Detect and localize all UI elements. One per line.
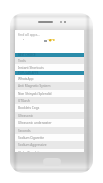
button[interactable]: Sodium Aggressive: [15, 141, 84, 149]
staticText: find all apps...: [18, 32, 41, 37]
button[interactable]: Back: [17, 32, 27, 42]
staticText: Anti Magnetic System: [18, 84, 51, 88]
staticText: Instant Shortcuts: [18, 66, 44, 70]
button[interactable]: Non Shinyaki Splendid: [15, 90, 84, 98]
staticText: POPULAR APPS: [18, 71, 39, 75]
button[interactable]: WhatsApp: [15, 75, 84, 83]
button[interactable]: BEST CHOICE: [15, 53, 84, 57]
staticText: Sodium Aggressive: [18, 143, 47, 147]
button[interactable]: find all apps...: [15, 30, 84, 39]
staticText: Booklets Cogs: [18, 106, 40, 110]
button[interactable]: Sodium Cigarette: [15, 134, 84, 142]
button[interactable]: GTGash: [15, 97, 84, 105]
button[interactable]: Ultrasonic underwater: [15, 119, 84, 127]
staticText: Ultrasonic: [18, 114, 34, 118]
button[interactable]: Instant Shortcuts: [15, 64, 84, 71]
button[interactable]: Anti Magnetic System: [15, 82, 84, 90]
staticText: Alpha Resolution: [18, 151, 44, 152]
staticText: Sodium Cigarette: [18, 136, 44, 140]
button[interactable]: POPULAR APPS: [15, 71, 84, 75]
staticText: BEST CHOICE: [18, 53, 36, 57]
staticText: Non Shinyaki Splendid: [18, 92, 52, 96]
staticText: GTGash: [18, 99, 30, 103]
staticText: Seconds: [18, 129, 31, 133]
staticText: WhatsApp: [18, 77, 34, 81]
button[interactable]: Booklets Cogs: [15, 104, 84, 112]
button[interactable]: Ultrasonic: [15, 112, 84, 120]
button[interactable]: Tools: [15, 57, 84, 64]
staticText: Tools: [18, 59, 26, 63]
button[interactable]: Alpha Resolution: [15, 149, 84, 152]
staticText: Ultrasonic underwater: [18, 121, 52, 125]
button[interactable]: Seconds: [15, 127, 84, 135]
